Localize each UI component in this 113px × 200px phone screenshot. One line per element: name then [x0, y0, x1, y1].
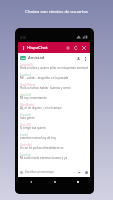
staticText: [javierito] [20, 143, 33, 147]
staticText: lo con ke puñao alrrededores es [20, 146, 64, 150]
button[interactable]: Close [80, 44, 88, 52]
staticText: Amistad [28, 55, 45, 61]
staticText: Si tengo toa quiero [20, 126, 46, 130]
staticText: 4:10 [20, 36, 26, 40]
staticText: Mi voy comentando [20, 96, 47, 100]
staticText: [AnaMaria] [20, 103, 34, 107]
staticText: [marisol] [20, 113, 32, 117]
staticText: Hola a todos y quiero pillar un estupend… [20, 66, 88, 70]
staticText: [luis_22] [20, 123, 31, 127]
staticText: Hola a nuevas hablar buenas y como [20, 86, 71, 90]
button[interactable]: Escribe un mensaje [18, 167, 90, 177]
staticText: [rocio] [20, 133, 29, 137]
button[interactable]: Recents [71, 177, 85, 187]
button[interactable]: Home [48, 177, 62, 187]
staticText: [sandra] [20, 153, 31, 157]
staticText: [carlitos] [20, 73, 31, 77]
button[interactable]: Back [24, 177, 38, 187]
button[interactable]: Menu [21, 45, 26, 50]
staticText: Mil... estab... sequidito en la pasada [20, 76, 69, 80]
button[interactable]: Send [76, 169, 82, 175]
button[interactable]: Refresh [72, 44, 80, 52]
staticText: [Juan Perez] [20, 83, 36, 87]
button[interactable]: Users [75, 55, 82, 62]
staticText: Ay_el de alguien, con el campo [20, 106, 62, 110]
staticText: [pepelui] [20, 93, 32, 97]
staticText: hola gente [20, 116, 35, 120]
button[interactable]: More options [82, 55, 89, 62]
staticText: estamos nueva hoy de hoy [20, 136, 57, 140]
staticText: chat [21, 57, 26, 60]
button[interactable]: Emoji [83, 169, 89, 175]
staticText: Chatea con cientos de usuarios [0, 8, 113, 14]
staticText: [usuarioX] [20, 63, 33, 67]
button[interactable]: Add [64, 44, 72, 52]
staticText: HispaChat [27, 45, 48, 51]
staticText: Escribe un mensaje [25, 170, 55, 174]
staticText: Mi todo nicolo estamos buena y ya [20, 156, 68, 160]
